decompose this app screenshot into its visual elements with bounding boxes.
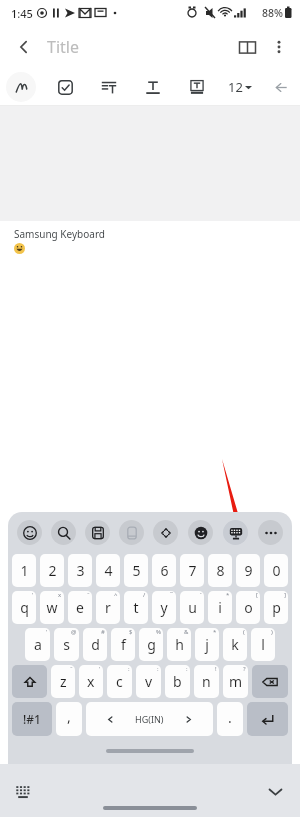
button[interactable]: 1 (12, 554, 36, 587)
button[interactable]: f (111, 628, 135, 661)
staticText: d (91, 635, 100, 654)
button[interactable]: u (180, 591, 204, 624)
staticText: 7 (188, 561, 197, 580)
button[interactable]: b (165, 665, 190, 698)
button[interactable]: q (12, 591, 36, 624)
button[interactable]: o (236, 591, 260, 624)
staticText: r (105, 598, 111, 617)
staticText: Title (47, 36, 79, 58)
button[interactable]: Backspace (252, 665, 288, 698)
button[interactable]: n (194, 665, 219, 698)
button[interactable]: l (251, 628, 275, 661)
button[interactable]: w (40, 591, 64, 624)
button[interactable]: Pen (6, 72, 36, 102)
button[interactable]: p (264, 591, 288, 624)
button[interactable]: !#1 (12, 702, 52, 736)
button[interactable]: Back (8, 31, 40, 63)
button[interactable]: Reading mode (230, 30, 264, 64)
button[interactable]: 12 (226, 78, 254, 96)
staticText: ` (200, 591, 202, 599)
button[interactable]: Text background (182, 72, 212, 102)
staticText: q (20, 598, 29, 617)
button[interactable]: Emoji (12, 512, 46, 552)
staticText: j (205, 635, 209, 654)
staticText: f (121, 635, 126, 654)
staticText: ! (215, 665, 217, 673)
staticText: x (87, 672, 95, 691)
button[interactable]: 5 (124, 554, 148, 587)
button[interactable]: More options (264, 32, 294, 62)
staticText: b (173, 672, 182, 691)
button[interactable]: Search (46, 512, 80, 552)
staticText: h (175, 635, 184, 654)
button[interactable]: Keyboard settings (218, 512, 253, 552)
button[interactable]: 9 (236, 554, 260, 587)
button[interactable]: Translate (114, 512, 148, 552)
staticText: n (202, 672, 211, 691)
staticText: ( (243, 628, 245, 636)
button[interactable]: i (208, 591, 232, 624)
staticText: 8 (216, 561, 225, 580)
staticText: u (188, 598, 197, 617)
button[interactable]: . (217, 702, 243, 736)
staticText: 4 (104, 561, 113, 580)
button[interactable]: d (83, 628, 107, 661)
staticText: !#1 (23, 711, 41, 727)
staticText: [ (256, 591, 258, 599)
staticText: 2 (48, 561, 57, 580)
staticText: s (63, 635, 70, 654)
button[interactable]: x (79, 665, 103, 698)
button[interactable]: a (25, 628, 50, 661)
staticText: l (261, 635, 265, 654)
button[interactable]: More (253, 512, 288, 552)
staticText: ˜ (87, 591, 90, 599)
button[interactable]: Enter (247, 702, 288, 736)
button[interactable]: Clipboard (80, 512, 114, 552)
staticText: % (156, 628, 161, 636)
staticText: t (133, 598, 139, 617)
staticText: z (60, 672, 67, 691)
button[interactable]: Hide keyboard (256, 772, 294, 810)
staticText: a (34, 635, 42, 654)
button[interactable]: Shift (12, 665, 47, 698)
button[interactable]: y (152, 591, 176, 624)
button[interactable]: 2 (40, 554, 64, 587)
staticText: 6 (160, 561, 169, 580)
button[interactable]: k (223, 628, 247, 661)
button[interactable]: r (96, 591, 120, 624)
button[interactable]: t (124, 591, 148, 624)
staticText: & (184, 628, 189, 636)
button[interactable]: c (107, 665, 132, 698)
button[interactable]: 6 (152, 554, 176, 587)
button[interactable]: Keyboard layout (4, 772, 42, 810)
staticText: @ (71, 628, 77, 636)
staticText: : (128, 665, 130, 673)
staticText: / (143, 591, 146, 599)
button[interactable]: Text style (138, 72, 168, 102)
button[interactable]: 0 (264, 554, 288, 587)
staticText: ^ (114, 591, 118, 599)
staticText: 1 (20, 561, 29, 580)
button[interactable]: 3 (68, 554, 92, 587)
button[interactable]: Paragraph style (94, 72, 124, 102)
button[interactable]: 7 (180, 554, 204, 587)
button[interactable]: Checklist (50, 72, 80, 102)
button[interactable]: Resize (148, 512, 183, 552)
button[interactable]: , (56, 702, 82, 736)
button[interactable]: Stickers (183, 512, 218, 552)
staticText: 5 (132, 561, 141, 580)
button[interactable]: m (223, 665, 248, 698)
button[interactable]: h (167, 628, 191, 661)
button[interactable]: HG(IN) (86, 702, 213, 736)
staticText: 1:45 (11, 6, 33, 21)
button[interactable]: z (51, 665, 75, 698)
button[interactable]: j (195, 628, 219, 661)
button[interactable]: v (136, 665, 161, 698)
button[interactable]: 4 (96, 554, 120, 587)
button[interactable]: e (68, 591, 92, 624)
button[interactable]: g (139, 628, 163, 661)
button[interactable]: Collapse toolbar (268, 74, 294, 100)
staticText: * (226, 591, 230, 599)
button[interactable]: 8 (208, 554, 232, 587)
button[interactable]: s (54, 628, 79, 661)
